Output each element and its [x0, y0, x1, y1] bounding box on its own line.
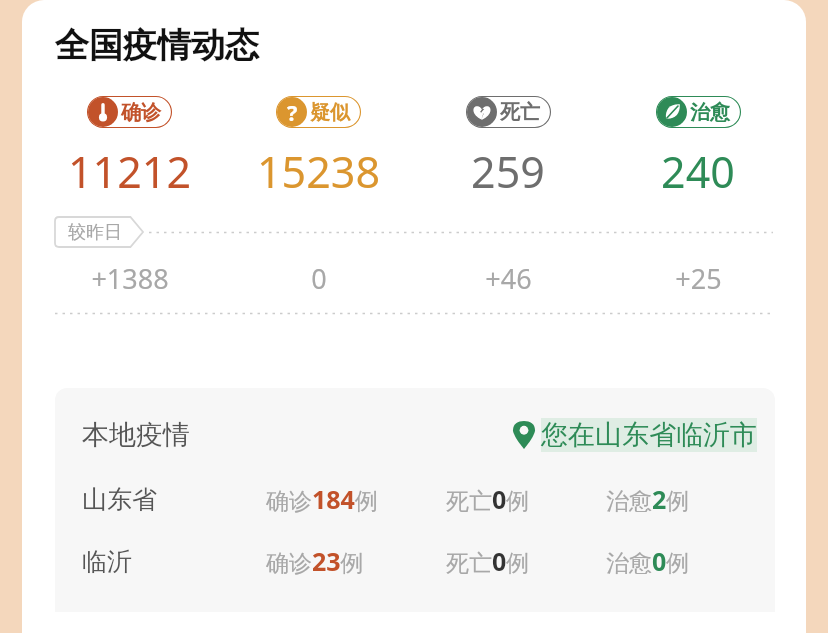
other: Location	[513, 421, 535, 449]
staticText: 疑似	[310, 100, 350, 125]
staticText: +46	[485, 260, 532, 297]
button[interactable]: 您在山东省临沂市	[541, 418, 757, 452]
button[interactable]: 本地疫情	[55, 388, 775, 468]
button[interactable]: ?	[276, 96, 361, 128]
staticText: 259	[471, 142, 545, 201]
staticText: 死亡0例	[446, 544, 606, 578]
staticText: 临沂	[82, 546, 266, 577]
staticText: 确诊23例	[266, 544, 446, 578]
button[interactable]: 死亡	[466, 96, 551, 128]
button[interactable]: 临沂	[55, 530, 775, 592]
staticText: 确诊184例	[266, 482, 446, 516]
staticText: 治愈	[690, 100, 730, 125]
button[interactable]: 山东省	[55, 468, 775, 530]
staticText: 死亡0例	[446, 482, 606, 516]
staticText: 0	[311, 260, 327, 297]
staticText: 您在山东省临沂市	[541, 418, 757, 452]
staticText: ?	[287, 98, 298, 127]
staticText: 山东省	[82, 484, 266, 515]
staticText: 治愈0例	[606, 544, 755, 578]
staticText: 全国疫情动态	[55, 24, 259, 67]
staticText: 确诊	[121, 100, 161, 125]
staticText: 较昨日	[68, 221, 122, 244]
staticText: 治愈2例	[606, 482, 755, 516]
staticText: 15238	[257, 142, 380, 201]
staticText: 本地疫情	[82, 418, 190, 452]
button[interactable]: 确诊	[87, 96, 172, 128]
button[interactable]: 治愈	[656, 96, 741, 128]
staticText: +1388	[91, 260, 169, 297]
staticText: 11212	[68, 142, 191, 201]
staticText: +25	[675, 260, 722, 297]
staticText: 240	[661, 142, 735, 201]
staticText: 死亡	[500, 100, 540, 125]
